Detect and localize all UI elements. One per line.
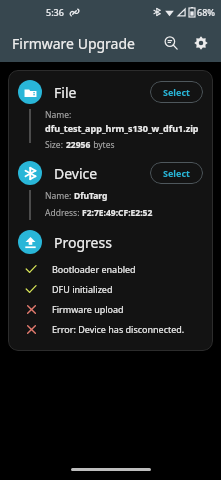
staticText: 22956 bbox=[66, 139, 91, 151]
staticText: 68% bbox=[197, 6, 215, 18]
button[interactable]: Bootloader enabled bbox=[18, 263, 203, 275]
staticText: Progress bbox=[54, 233, 112, 252]
button[interactable]: Select bbox=[150, 81, 203, 103]
staticText: DfuTarg bbox=[74, 190, 108, 202]
button[interactable]: DFU initialized bbox=[18, 283, 203, 295]
staticText: Name: bbox=[45, 109, 72, 121]
staticText: dfu_test_app_hrm_s130_w_dfu1.zip bbox=[45, 122, 199, 134]
button[interactable]: Error: Device has disconnected. bbox=[18, 323, 203, 335]
staticText: F2:7E:49:CF:E2:52 bbox=[82, 207, 153, 219]
staticText: Select bbox=[163, 86, 190, 98]
staticText: Firmware upload bbox=[52, 303, 124, 315]
button[interactable]: Select bbox=[150, 162, 203, 184]
button[interactable]: Settings bbox=[186, 28, 216, 58]
staticText: Bootloader enabled bbox=[52, 263, 136, 275]
staticText: File bbox=[54, 83, 77, 102]
staticText: Size: bbox=[45, 139, 66, 151]
staticText: Error: Device has disconnected. bbox=[52, 323, 185, 335]
staticText: bytes bbox=[91, 139, 115, 151]
button[interactable]: Search bbox=[156, 28, 186, 58]
staticText: 5:36 bbox=[46, 6, 64, 18]
staticText: DFU initialized bbox=[52, 283, 113, 295]
staticText: Device bbox=[54, 164, 98, 183]
staticText: Name: bbox=[45, 190, 74, 202]
staticText: Address: bbox=[45, 207, 82, 219]
button[interactable]: Firmware upload bbox=[18, 303, 203, 315]
staticText: Select bbox=[163, 167, 190, 179]
staticText: Firmware Upgrade bbox=[12, 34, 135, 53]
